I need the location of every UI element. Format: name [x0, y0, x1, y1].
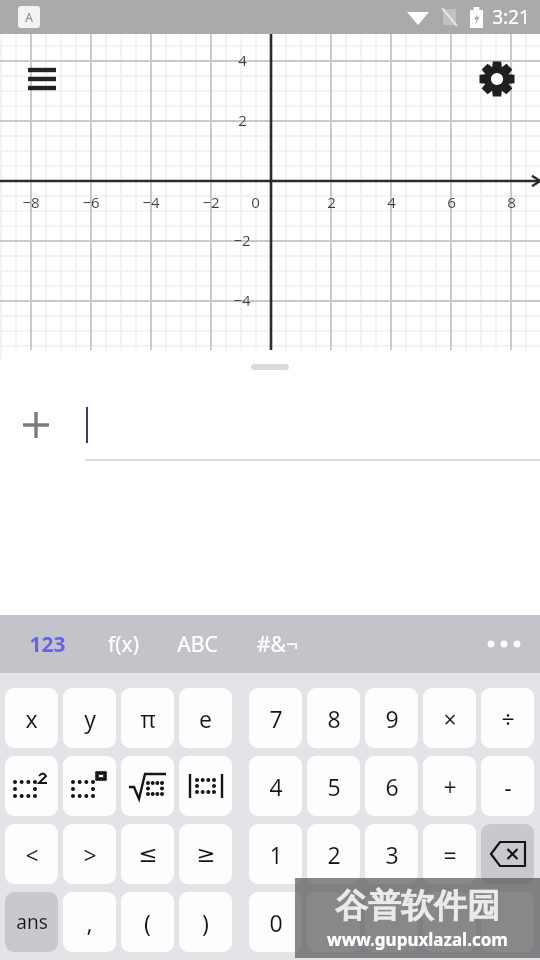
- button[interactable]: [179, 756, 232, 816]
- staticText: −2: [202, 192, 220, 212]
- button[interactable]: [423, 892, 476, 952]
- staticText: +: [443, 771, 457, 802]
- staticText: 9: [385, 703, 399, 734]
- staticText: π: [140, 703, 156, 734]
- button[interactable]: ans: [5, 892, 58, 952]
- button[interactable]: 1: [249, 824, 302, 884]
- button[interactable]: 5: [307, 756, 360, 816]
- staticText: −6: [82, 192, 100, 212]
- button[interactable]: ≥: [179, 824, 232, 884]
- staticText: x: [25, 703, 38, 734]
- staticText: ≤: [138, 841, 158, 868]
- staticText: 8: [327, 703, 341, 734]
- staticText: 123: [29, 630, 66, 659]
- button[interactable]: ): [179, 892, 232, 952]
- button[interactable]: ,: [63, 892, 116, 952]
- staticText: ÷: [501, 703, 515, 734]
- button[interactable]: ≤: [121, 824, 174, 884]
- staticText: =: [443, 839, 457, 870]
- button[interactable]: ×: [423, 688, 476, 748]
- button[interactable]: 8: [307, 688, 360, 748]
- button[interactable]: [5, 756, 58, 816]
- button[interactable]: 7: [249, 688, 302, 748]
- button[interactable]: 2: [307, 824, 360, 884]
- staticText: 8: [507, 192, 516, 212]
- staticText: ): [202, 907, 209, 938]
- button[interactable]: -: [481, 756, 534, 816]
- staticText: 2: [327, 192, 336, 212]
- button[interactable]: ABC: [162, 615, 232, 673]
- staticText: −4: [233, 290, 251, 310]
- button[interactable]: Settings: [473, 55, 521, 103]
- staticText: ans: [16, 909, 48, 935]
- staticText: −8: [22, 192, 40, 212]
- button[interactable]: 3: [365, 824, 418, 884]
- button[interactable]: x: [5, 688, 58, 748]
- button[interactable]: π: [121, 688, 174, 748]
- button[interactable]: =: [423, 824, 476, 884]
- staticText: -: [504, 771, 512, 802]
- button[interactable]: [307, 892, 360, 952]
- button[interactable]: <: [5, 824, 58, 884]
- button[interactable]: [0, 394, 540, 456]
- staticText: www.gupuxlazal.com: [327, 928, 508, 951]
- staticText: −2: [233, 230, 251, 250]
- staticText: 谷普软件园: [335, 885, 500, 927]
- staticText: <: [25, 839, 39, 870]
- button[interactable]: Backspace: [481, 824, 534, 884]
- staticText: ABC: [177, 630, 218, 659]
- button[interactable]: 123: [18, 615, 76, 673]
- staticText: e: [199, 703, 212, 734]
- button[interactable]: Menu: [18, 58, 66, 98]
- button[interactable]: e: [179, 688, 232, 748]
- button[interactable]: #&¬: [242, 615, 312, 673]
- staticText: 5: [327, 771, 341, 802]
- staticText: 0: [251, 192, 260, 212]
- staticText: 3:21: [492, 4, 530, 30]
- button[interactable]: More options: [476, 615, 532, 673]
- button[interactable]: 6: [365, 756, 418, 816]
- staticText: 0: [269, 907, 283, 938]
- staticText: 7: [269, 703, 283, 734]
- button[interactable]: 4: [249, 756, 302, 816]
- staticText: 2: [327, 839, 341, 870]
- button[interactable]: +: [423, 756, 476, 816]
- staticText: #&¬: [257, 630, 298, 659]
- button[interactable]: (: [121, 892, 174, 952]
- staticText: ≥: [196, 841, 216, 868]
- staticText: (: [144, 907, 151, 938]
- staticText: 4: [269, 771, 283, 802]
- staticText: ×: [443, 703, 457, 734]
- staticText: f(x): [108, 630, 139, 659]
- button[interactable]: [121, 756, 174, 816]
- staticText: y: [84, 703, 96, 734]
- button[interactable]: 9: [365, 688, 418, 748]
- staticText: 4: [387, 192, 396, 212]
- button[interactable]: ÷: [481, 688, 534, 748]
- staticText: ,: [86, 907, 93, 938]
- button[interactable]: [365, 892, 418, 952]
- button[interactable]: f(x): [92, 615, 154, 673]
- staticText: >: [83, 839, 97, 870]
- staticText: 1: [269, 839, 283, 870]
- staticText: 3: [385, 839, 399, 870]
- button[interactable]: 0: [249, 892, 302, 952]
- staticText: 4: [238, 50, 247, 70]
- button[interactable]: >: [63, 824, 116, 884]
- button[interactable]: y: [63, 688, 116, 748]
- staticText: 6: [447, 192, 456, 212]
- staticText: 2: [238, 110, 247, 130]
- staticText: −4: [142, 192, 160, 212]
- button[interactable]: [481, 892, 534, 952]
- staticText: 6: [385, 771, 399, 802]
- staticText: A: [25, 9, 33, 25]
- button[interactable]: [63, 756, 116, 816]
